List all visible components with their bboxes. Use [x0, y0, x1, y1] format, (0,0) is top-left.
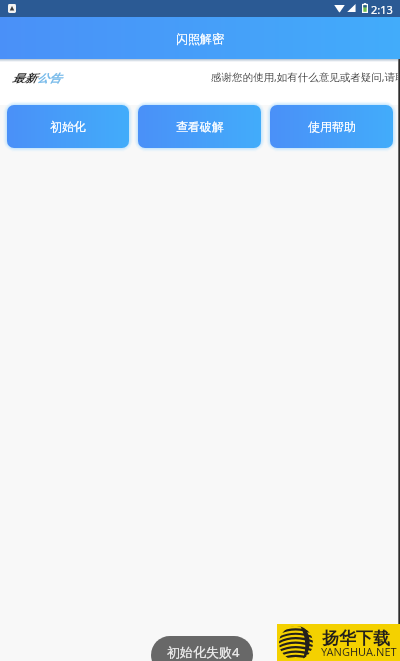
button[interactable]: 初始化失败4 — [151, 636, 253, 661]
button[interactable]: 初始化 — [7, 105, 129, 148]
staticText: 2:13 — [371, 2, 393, 17]
button[interactable]: 最新 — [12, 71, 61, 84]
button[interactable]: 使用帮助 — [270, 105, 393, 148]
staticText: 初始化 — [50, 119, 86, 134]
staticText: 扬华下载 — [322, 628, 390, 649]
other: Notification — [8, 4, 16, 13]
staticText: 查看破解 — [176, 119, 224, 134]
staticText: 使用帮助 — [308, 119, 356, 134]
staticText: 公告 — [37, 71, 61, 84]
staticText: YANGHUA.NET — [321, 644, 397, 659]
staticText: 闪照解密 — [176, 31, 224, 46]
staticText: 最新 — [12, 71, 37, 84]
button[interactable]: 查看破解 — [138, 105, 261, 148]
staticText: 感谢您的使用,如有什么意见或者疑问,请联 — [211, 70, 400, 84]
staticText: 初始化失败4 — [167, 643, 240, 661]
